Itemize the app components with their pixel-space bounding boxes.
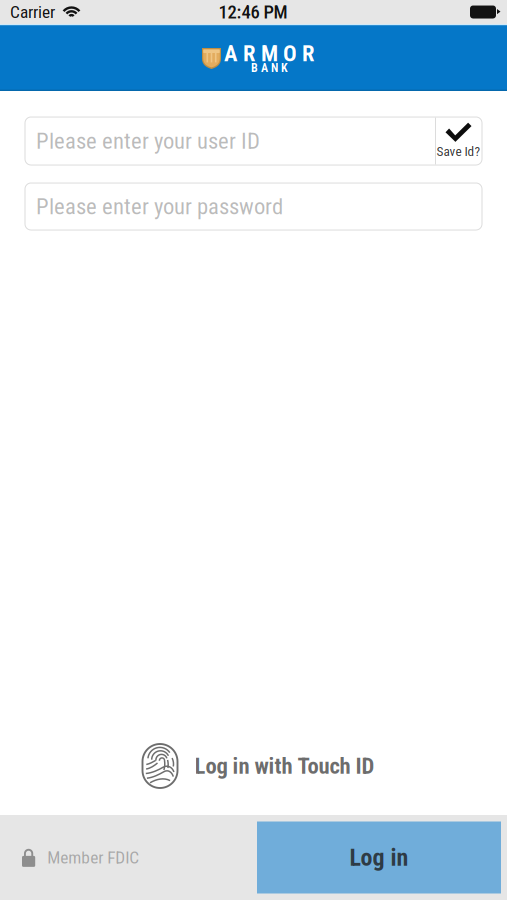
staticText: Save Id? [436, 144, 480, 159]
staticText: Log in [349, 843, 408, 871]
staticText: A R M O R [224, 40, 315, 67]
staticText: 12:46 PM [218, 1, 287, 23]
staticText: Please enter your password [36, 193, 283, 220]
staticText: Log in with Touch ID [194, 753, 374, 779]
staticText: Please enter your user ID [36, 128, 260, 154]
button[interactable]: Log in [257, 821, 501, 893]
staticText: Carrier [10, 2, 55, 22]
button[interactable]: Save Id? [435, 117, 482, 164]
staticText: B A N K [251, 61, 288, 75]
staticText: Member FDIC [47, 847, 139, 868]
button[interactable]: Log in with Touch ID [124, 741, 382, 791]
